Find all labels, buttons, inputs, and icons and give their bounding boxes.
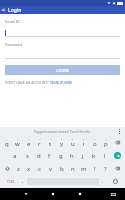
button[interactable] (5, 28, 120, 37)
button[interactable]: LOGIN (5, 65, 120, 75)
staticText: m (81, 165, 87, 173)
staticText: v (49, 165, 53, 173)
staticText: p (104, 140, 108, 148)
button[interactable]: Backspace (111, 136, 124, 149)
staticText: a (13, 152, 17, 160)
staticText: 9 (94, 137, 96, 140)
staticText: s (26, 152, 29, 160)
button[interactable]: j (77, 149, 88, 162)
button[interactable]: 9 (89, 136, 100, 149)
button[interactable]: x (23, 162, 34, 175)
staticText: d (37, 152, 41, 160)
button[interactable]: 4 (34, 136, 45, 149)
staticText: f (48, 152, 51, 160)
staticText: ?123 (7, 180, 14, 184)
staticText: 5 (50, 137, 52, 140)
button[interactable]: 2 (12, 136, 23, 149)
staticText: 3 (28, 137, 30, 140)
button[interactable]: Back (12, 188, 39, 200)
staticText: LOGIN (56, 68, 69, 73)
button[interactable]: ? (100, 162, 111, 175)
staticText: z (17, 165, 20, 173)
staticText: i (83, 140, 85, 148)
staticText: DON'T HAVE AN ACCOUNT? (5, 80, 50, 85)
button[interactable]: c (34, 162, 45, 175)
button[interactable]: l (99, 149, 110, 162)
staticText: g (59, 152, 63, 160)
button[interactable]: Backspace (111, 162, 124, 175)
button[interactable]: Enter (110, 149, 124, 162)
button[interactable]: . (99, 175, 107, 188)
button[interactable]: Emoji (107, 175, 124, 188)
button[interactable] (5, 51, 120, 59)
staticText: SIGNUP HERE (50, 80, 73, 85)
button[interactable]: More options (117, 129, 122, 134)
staticText: y (60, 140, 64, 148)
staticText: x (27, 165, 31, 173)
button[interactable]: 5 (45, 136, 56, 149)
button[interactable]: ! (89, 162, 100, 175)
button[interactable]: h (66, 149, 77, 162)
button[interactable]: 3 (23, 136, 34, 149)
button[interactable]: Switch keyboard (101, 188, 125, 200)
button[interactable]: a (9, 149, 21, 162)
staticText: 6 (61, 137, 63, 140)
button[interactable]: n (67, 162, 78, 175)
staticText: ? (104, 165, 107, 173)
button[interactable]: Shift (1, 162, 13, 175)
button[interactable]: 1 (1, 136, 12, 149)
staticText: 7 (72, 137, 74, 140)
button[interactable]: 0 (100, 136, 111, 149)
button[interactable]: Recents (66, 188, 93, 200)
button[interactable]: v (45, 162, 56, 175)
button[interactable]: s (21, 149, 33, 162)
staticText: q (5, 140, 9, 148)
staticText: o (93, 140, 97, 148)
staticText: c (38, 165, 41, 173)
button[interactable]: , (19, 175, 27, 188)
staticText: 2 (17, 137, 19, 140)
staticText: t (49, 140, 52, 148)
staticText: h (70, 152, 74, 160)
button[interactable]: m (78, 162, 89, 175)
button[interactable]: b (56, 162, 67, 175)
button[interactable]: Back (0, 6, 8, 14)
button[interactable]: DON'T HAVE AN ACCOUNT? (5, 80, 120, 85)
button[interactable]: Suggest contact names? Touch for info. (34, 130, 91, 134)
button[interactable]: Home (39, 188, 66, 200)
staticText: 1 (6, 137, 8, 140)
staticText: e (27, 140, 31, 148)
staticText: ! (94, 165, 96, 173)
button[interactable]: ?123 (1, 175, 19, 188)
button[interactable]: 6 (56, 136, 67, 149)
staticText: . (102, 178, 104, 185)
button[interactable]: 8 (78, 136, 89, 149)
button[interactable]: Email ID (5, 19, 20, 24)
staticText: r (38, 140, 41, 148)
staticText: u (71, 140, 75, 148)
button[interactable]: z (13, 162, 23, 175)
staticText: j (82, 152, 84, 160)
staticText: 8 (83, 137, 85, 140)
button[interactable]: d (33, 149, 44, 162)
staticText: k (92, 152, 96, 160)
button[interactable]: Password (5, 42, 23, 47)
staticText: , (22, 178, 24, 185)
staticText: 4 (39, 137, 41, 140)
staticText: 0 (105, 137, 107, 140)
staticText: l (104, 152, 106, 160)
staticText: w (15, 140, 20, 148)
button[interactable]: k (88, 149, 99, 162)
button[interactable]: 7 (67, 136, 78, 149)
staticText: n (71, 165, 75, 173)
staticText: b (60, 165, 64, 173)
staticText: Login (8, 7, 22, 14)
button[interactable]: g (55, 149, 66, 162)
button[interactable]: f (44, 149, 55, 162)
